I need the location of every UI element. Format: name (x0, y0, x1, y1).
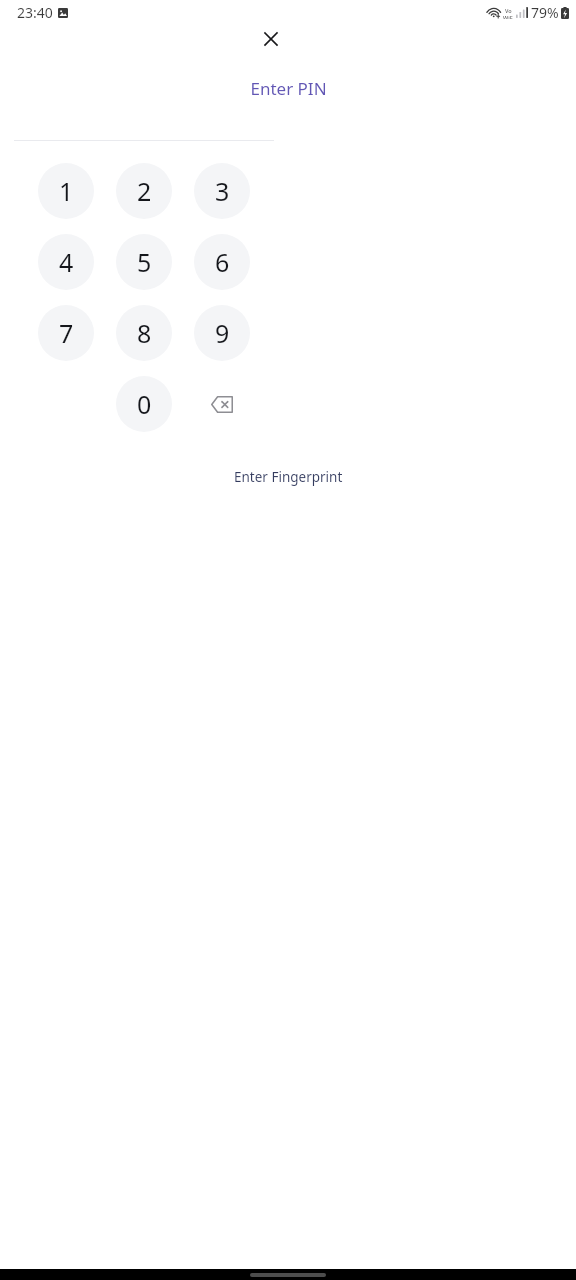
button[interactable]: 1 (38, 163, 94, 219)
button[interactable]: Enter Fingerprint (225, 463, 352, 491)
staticText: Enter Fingerprint (234, 468, 343, 486)
staticText: 79% (531, 3, 559, 22)
button[interactable]: Home (250, 1273, 326, 1277)
button[interactable]: 3 (194, 163, 250, 219)
staticText: 5 (137, 245, 152, 279)
button[interactable]: 8 (116, 305, 172, 361)
staticText: 1 (59, 174, 74, 208)
button[interactable]: Close (257, 25, 285, 53)
staticText: 23:40 (17, 3, 53, 22)
staticText: 4 (59, 245, 74, 279)
button[interactable]: Delete (194, 376, 250, 432)
button[interactable]: 6 (194, 234, 250, 290)
button[interactable]: 9 (194, 305, 250, 361)
staticText: 3 (215, 174, 230, 208)
staticText: Vo (505, 7, 512, 14)
button[interactable]: 2 (116, 163, 172, 219)
staticText: 9 (215, 316, 230, 350)
button[interactable]: 7 (38, 305, 94, 361)
staticText: 8 (137, 316, 152, 350)
staticText: Enter PIN (250, 77, 327, 100)
staticText: 6 (215, 245, 230, 279)
staticText: 2 (137, 174, 152, 208)
button[interactable]: 4 (38, 234, 94, 290)
button[interactable]: 0 (116, 376, 172, 432)
staticText: 7 (59, 316, 74, 350)
staticText: WiFi (503, 14, 514, 19)
button[interactable]: 5 (116, 234, 172, 290)
staticText: 0 (137, 387, 152, 421)
